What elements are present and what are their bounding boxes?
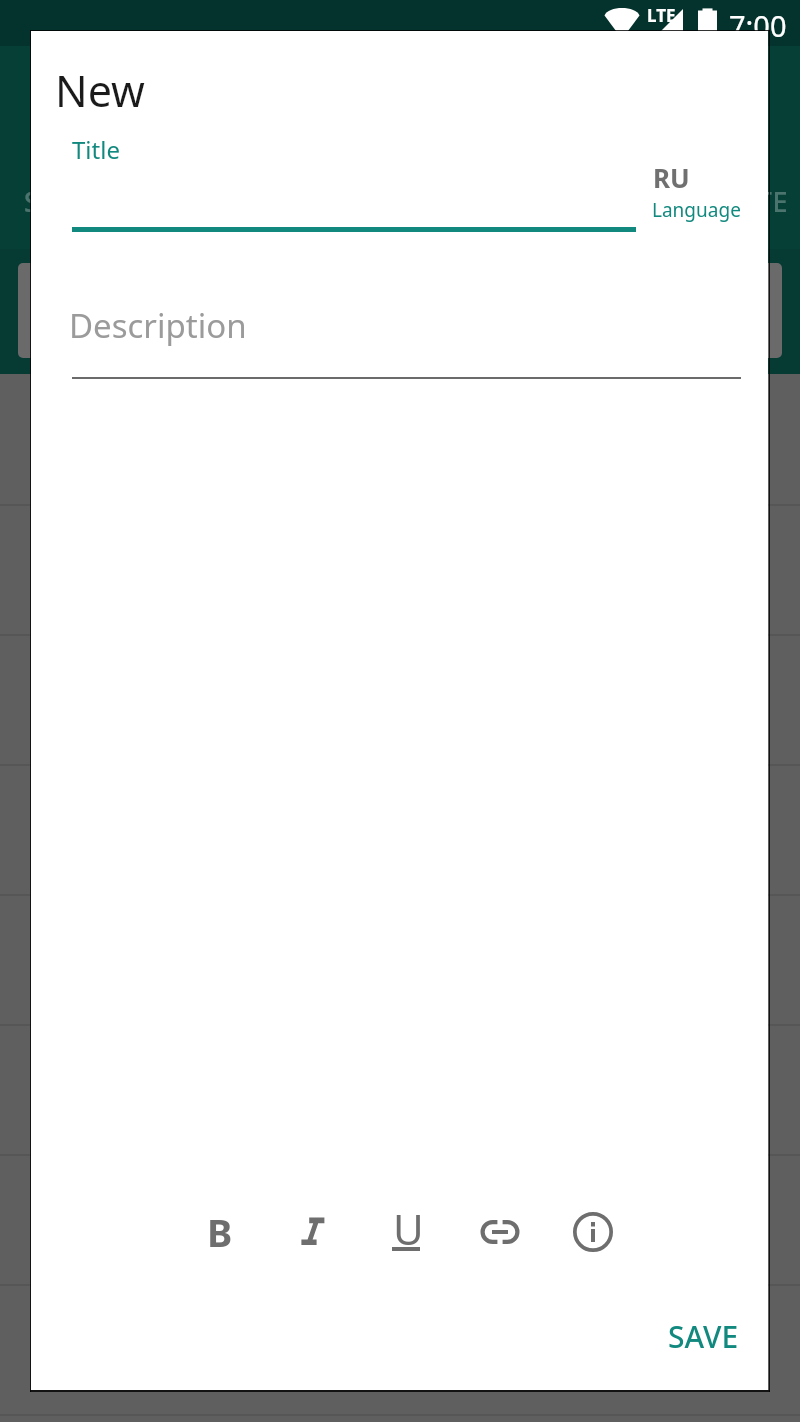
staticText: RU bbox=[653, 160, 690, 195]
staticText: 7:00 bbox=[729, 6, 787, 45]
staticText: Title bbox=[72, 133, 120, 166]
button[interactable]: RU bbox=[652, 155, 772, 225]
button[interactable]: Underline bbox=[376, 1202, 436, 1262]
staticText: SEARCH bbox=[24, 183, 132, 220]
staticText: Language bbox=[652, 197, 741, 223]
button[interactable]: Title bbox=[72, 126, 636, 232]
button[interactable]: Bold bbox=[190, 1202, 250, 1262]
staticText: LTE bbox=[647, 4, 676, 27]
staticText: FAVORITE bbox=[656, 183, 789, 220]
staticText: SAVE bbox=[668, 1316, 739, 1357]
staticText: New bbox=[55, 61, 145, 120]
button[interactable]: Italic bbox=[283, 1202, 343, 1262]
button[interactable]: Insert link bbox=[470, 1202, 530, 1262]
staticText: Description bbox=[69, 303, 247, 348]
staticText: B bbox=[207, 1206, 233, 1258]
button[interactable]: Info bbox=[563, 1202, 623, 1262]
button[interactable]: SEARCH bbox=[24, 183, 132, 227]
button[interactable]: FAVORITE bbox=[656, 183, 789, 227]
staticText: U bbox=[393, 1200, 424, 1257]
button[interactable]: SAVE bbox=[638, 1294, 769, 1379]
button[interactable]: Description bbox=[69, 296, 741, 386]
